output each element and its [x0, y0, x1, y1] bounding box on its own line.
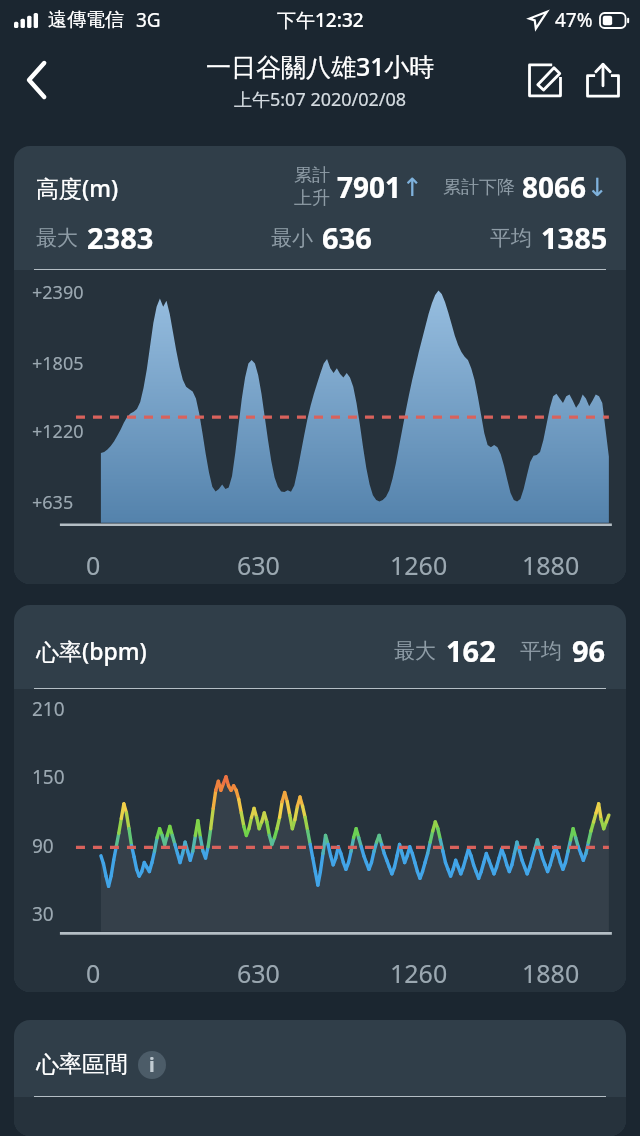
staticText: 47%	[555, 7, 593, 33]
staticText: 1880	[522, 956, 580, 990]
button[interactable]: Edit	[516, 51, 574, 109]
staticText: 平均	[490, 225, 532, 251]
staticText: 心率區間	[36, 1050, 128, 1079]
staticText: +1220	[32, 419, 84, 444]
staticText: 162	[446, 631, 496, 670]
staticText: 96	[572, 631, 606, 670]
staticText: 2383	[87, 218, 154, 257]
staticText: 630	[237, 548, 280, 582]
staticText: 150	[32, 764, 65, 790]
staticText: 1260	[390, 956, 448, 990]
staticText: 630	[237, 956, 280, 990]
button[interactable]: 心率區間	[14, 1020, 626, 1136]
staticText: 90	[32, 833, 54, 859]
staticText: 心率(bpm)	[36, 635, 147, 666]
staticText: ↓	[587, 173, 608, 202]
staticText: +635	[32, 490, 74, 515]
staticText: 上午5:07 2020/02/08	[234, 87, 407, 112]
button[interactable]: Back	[8, 51, 66, 109]
staticText: 0	[86, 548, 101, 582]
button[interactable]: 高度(m)	[14, 146, 626, 584]
staticText: 高度(m)	[36, 172, 119, 203]
staticText: +1805	[32, 351, 84, 376]
staticText: 下午12:32	[277, 7, 364, 33]
staticText: 一日谷關八雄31小時	[206, 49, 435, 83]
staticText: 遠傳電信	[48, 8, 124, 32]
staticText: 210	[32, 696, 65, 722]
staticText: 30	[32, 901, 54, 927]
button[interactable]: 心率(bpm)	[14, 605, 626, 992]
staticText: 上升	[294, 187, 330, 210]
staticText: 最大	[394, 638, 436, 664]
staticText: 1260	[390, 548, 448, 582]
staticText: ↑	[402, 173, 423, 202]
staticText: 0	[86, 956, 101, 990]
staticText: +2390	[32, 280, 84, 305]
staticText: 1385	[541, 218, 608, 257]
staticText: 636	[322, 218, 372, 257]
button[interactable]: Info	[138, 1051, 166, 1079]
staticText: 8066	[522, 168, 587, 206]
staticText: 平均	[520, 638, 562, 664]
staticText: 累計下降	[443, 176, 515, 199]
button[interactable]: Share	[574, 51, 632, 109]
staticText: 累計	[294, 164, 330, 187]
staticText: 最大	[36, 225, 78, 251]
staticText: 1880	[522, 548, 580, 582]
staticText: i	[149, 1052, 155, 1078]
staticText: 最小	[271, 225, 313, 251]
staticText: 7901	[337, 168, 402, 206]
staticText: 3G	[136, 7, 161, 33]
